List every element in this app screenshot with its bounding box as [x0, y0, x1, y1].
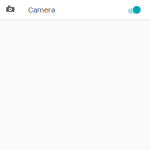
staticText: Camera [28, 5, 55, 14]
button[interactable]: Camera [0, 0, 150, 20]
